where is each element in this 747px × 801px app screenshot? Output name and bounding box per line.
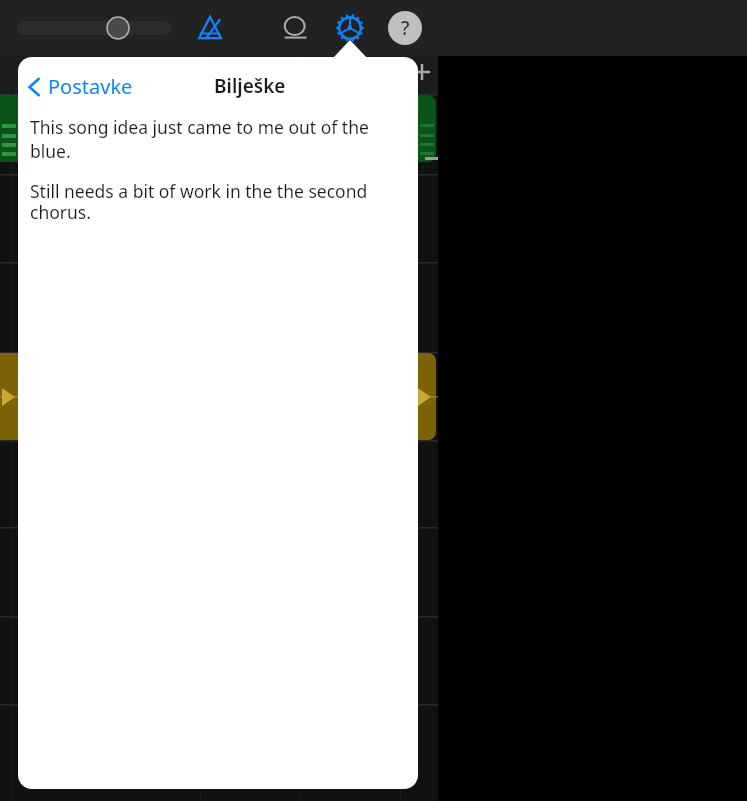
staticText: Postavke [48, 73, 133, 100]
staticText: Bilješke [214, 73, 286, 99]
button[interactable]: Settings [330, 8, 370, 48]
button[interactable]: Postavke [26, 73, 133, 100]
button[interactable]: Volume slider [17, 18, 172, 38]
button[interactable]: Metronome [190, 8, 230, 48]
button[interactable]: Help [388, 11, 422, 45]
staticText: This song idea just came to me out of th… [30, 115, 400, 163]
staticText: ? [401, 15, 410, 41]
button[interactable]: Cycle [275, 8, 315, 48]
staticText: Still needs a bit of work in the the sec… [30, 179, 368, 224]
